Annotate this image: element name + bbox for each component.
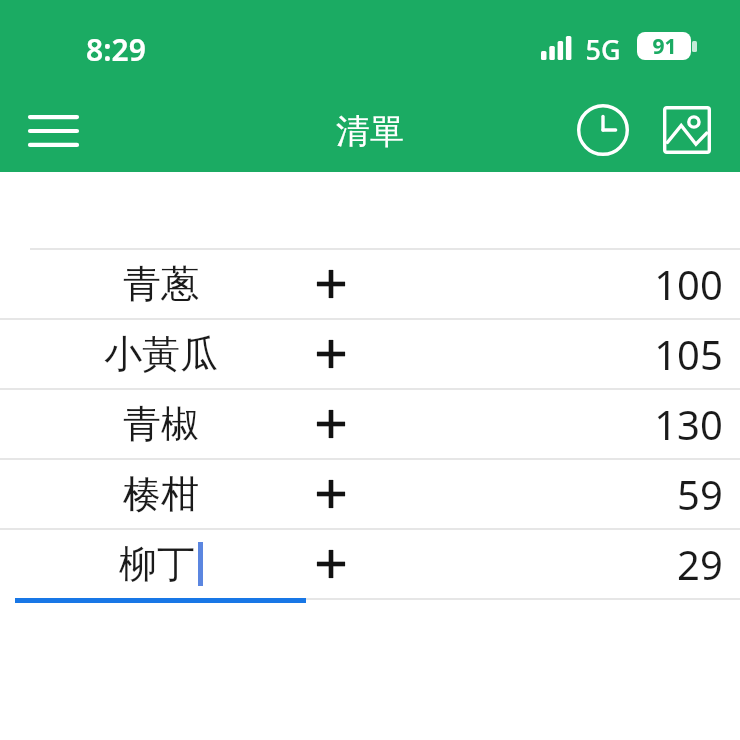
button[interactable]: 楱柑: [0, 460, 740, 528]
button[interactable]: 青椒: [0, 390, 740, 458]
staticText: 青椒: [123, 400, 199, 448]
staticText: 8:29: [86, 29, 146, 70]
button[interactable]: Photos: [655, 99, 719, 161]
button[interactable]: Add: [301, 530, 361, 598]
button[interactable]: Add 青椒: [301, 390, 361, 458]
staticText: 楱柑: [123, 470, 199, 518]
staticText: 29: [677, 537, 723, 591]
button[interactable]: 小黃瓜: [0, 320, 740, 388]
staticText: 青蔥: [123, 260, 199, 308]
button[interactable]: 青蔥: [0, 250, 740, 318]
staticText: 清單: [336, 110, 404, 153]
staticText: 柳丁: [119, 540, 195, 588]
button[interactable]: History: [571, 99, 635, 161]
staticText: 91: [652, 32, 677, 60]
button[interactable]: Add 青蔥: [301, 250, 361, 318]
staticText: 105: [654, 327, 723, 381]
staticText: 130: [654, 397, 723, 451]
button[interactable]: 29: [560, 530, 723, 598]
staticText: 小黃瓜: [104, 330, 218, 378]
staticText: 100: [654, 257, 723, 311]
button[interactable]: Menu: [16, 100, 90, 162]
button[interactable]: Add 楱柑: [301, 460, 361, 528]
staticText: 59: [677, 467, 723, 521]
button[interactable]: 柳丁: [15, 530, 306, 598]
staticText: 5G: [585, 31, 621, 68]
button[interactable]: Add 小黃瓜: [301, 320, 361, 388]
